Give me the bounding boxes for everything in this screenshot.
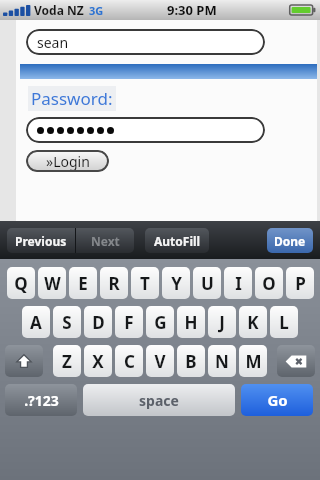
- staticText: S: [62, 311, 72, 334]
- staticText: C: [124, 350, 135, 373]
- button[interactable]: G: [146, 306, 174, 338]
- button[interactable]: Q: [7, 267, 35, 299]
- button[interactable]: H: [177, 306, 205, 338]
- staticText: P: [295, 272, 306, 295]
- staticText: Next: [91, 233, 120, 249]
- staticText: R: [108, 272, 120, 295]
- button[interactable]: AutoFill: [145, 228, 209, 253]
- button[interactable]: M: [239, 345, 267, 377]
- staticText: Y: [171, 272, 182, 295]
- staticText: B: [185, 350, 197, 373]
- button[interactable]: J: [208, 306, 236, 338]
- staticText: Previous: [15, 233, 67, 249]
- button[interactable]: Z: [53, 345, 81, 377]
- button[interactable]: R: [100, 267, 128, 299]
- button[interactable]: Next: [76, 228, 134, 253]
- staticText: »Login: [46, 152, 90, 171]
- button[interactable]: Go: [241, 384, 313, 416]
- button[interactable]: C: [115, 345, 143, 377]
- staticText: F: [124, 311, 134, 334]
- button[interactable]: »Login: [26, 150, 109, 172]
- button[interactable]: S: [53, 306, 81, 338]
- staticText: Voda NZ: [34, 2, 84, 18]
- staticText: I: [235, 272, 242, 295]
- staticText: T: [140, 272, 150, 295]
- button[interactable]: Done: [267, 228, 313, 253]
- staticText: J: [219, 311, 225, 334]
- staticText: Q: [14, 272, 28, 295]
- staticText: G: [154, 311, 167, 334]
- staticText: 9:30 PM: [167, 1, 217, 19]
- button[interactable]: W: [38, 267, 66, 299]
- button[interactable]: L: [270, 306, 298, 338]
- button[interactable]: B: [177, 345, 205, 377]
- button[interactable]: A: [22, 306, 50, 338]
- staticText: E: [78, 272, 88, 295]
- staticText: U: [201, 272, 214, 295]
- button[interactable]: V: [146, 345, 174, 377]
- button[interactable]: sean: [26, 29, 265, 55]
- staticText: W: [44, 272, 61, 295]
- staticText: K: [247, 311, 259, 334]
- button[interactable]: I: [224, 267, 252, 299]
- button[interactable]: D: [84, 306, 112, 338]
- button[interactable]: T: [131, 267, 159, 299]
- button[interactable]: [26, 117, 265, 143]
- button[interactable]: .?123: [5, 384, 77, 416]
- staticText: X: [92, 350, 104, 373]
- button[interactable]: O: [255, 267, 283, 299]
- staticText: AutoFill: [154, 233, 201, 249]
- staticText: M: [245, 350, 262, 373]
- button[interactable]: N: [208, 345, 236, 377]
- staticText: 3G: [89, 3, 104, 18]
- button[interactable]: E: [69, 267, 97, 299]
- button[interactable]: Backspace: [277, 345, 315, 377]
- staticText: L: [279, 311, 289, 334]
- button[interactable]: space: [83, 384, 235, 416]
- staticText: .?123: [24, 391, 59, 410]
- staticText: Password:: [31, 87, 113, 110]
- button[interactable]: P: [286, 267, 314, 299]
- button[interactable]: Shift: [5, 345, 43, 377]
- staticText: O: [262, 272, 276, 295]
- button[interactable]: F: [115, 306, 143, 338]
- button[interactable]: Y: [162, 267, 190, 299]
- staticText: A: [30, 311, 42, 334]
- staticText: Done: [274, 233, 306, 249]
- staticText: sean: [37, 33, 69, 52]
- staticText: Z: [62, 350, 72, 373]
- button[interactable]: U: [193, 267, 221, 299]
- staticText: N: [215, 350, 229, 373]
- button[interactable]: K: [239, 306, 267, 338]
- button[interactable]: X: [84, 345, 112, 377]
- staticText: D: [92, 311, 105, 334]
- button[interactable]: Previous: [7, 228, 75, 253]
- staticText: space: [139, 391, 179, 410]
- staticText: V: [154, 350, 166, 373]
- staticText: H: [184, 311, 198, 334]
- staticText: Go: [267, 390, 288, 410]
